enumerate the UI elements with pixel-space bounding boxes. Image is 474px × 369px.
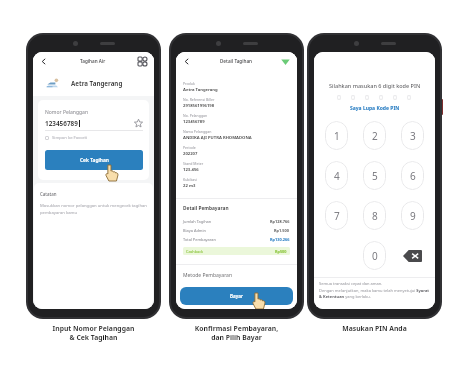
button[interactable]: Back [39,56,50,67]
staticText: ANDIKA AJI PUTRA RHOMADONA [183,135,252,141]
button[interactable]: 5 [363,161,386,190]
staticText: Stand Meter [183,161,204,166]
staticText: 8 [372,209,378,223]
staticText: Input Nomor Pelanggan & Cek Tagihan [26,324,161,342]
staticText: 2918561996198 [183,103,215,109]
button[interactable]: 0 [363,241,386,270]
staticText: 123456789 [45,119,78,128]
button[interactable]: Connection status [280,56,291,67]
staticText: 0 [379,93,384,103]
staticText: 7 [334,209,340,223]
staticText: Detail Pembayaran [183,205,229,212]
staticText: Aetra Tangerang [71,79,123,87]
staticText: 0 [337,93,342,103]
staticText: 22 m3 [183,183,196,189]
staticText: Masukan PIN Anda [307,324,442,333]
staticText: Total Pembayaran [183,237,216,242]
button[interactable]: Back [182,56,193,67]
staticText: 0 [372,249,378,263]
staticText: Saya Lupa Kode PIN [350,105,400,112]
staticText: Catatan [40,191,57,197]
staticText: Silahkan masukan 6 digit kode PIN [329,82,421,89]
staticText: 202207 [183,151,198,157]
button[interactable]: Favourite [134,119,143,128]
staticText: Masukkan nomor pelanggan untuk mengecek … [40,203,147,215]
staticText: Bayar [230,293,243,299]
staticText: 0 [365,93,370,103]
staticText: Rp1.500 [274,228,290,233]
staticText: 3 [410,129,416,143]
button[interactable]: 9 [401,201,424,230]
staticText: Rp130.266 [270,237,290,242]
button[interactable]: Bayar [180,287,293,305]
staticText: 123-456 [183,167,199,173]
staticText: 0 [351,93,356,103]
staticText: Konfirmasi Pembayaran, dan Pilih Bayar [169,324,304,342]
staticText: Cek Tagihan [80,157,109,164]
staticText: 5 [372,169,378,183]
staticText: 4 [334,169,340,183]
staticText: Tagihan Air [80,58,106,64]
staticText: Nama Pelanggan [183,129,212,134]
button[interactable]: Delete [401,241,424,270]
staticText: Jumlah Tagihan [183,219,212,224]
staticText: 0 [407,93,412,103]
staticText: 123456789 [183,119,205,125]
button[interactable]: 6 [401,161,424,190]
staticText: No. Pelanggan [183,113,208,118]
staticText: 2 [372,129,378,143]
button[interactable]: Saya Lupa Kode PIN [350,105,400,112]
button[interactable]: 4 [325,161,348,190]
button[interactable]: 1 [325,121,348,150]
staticText: 6 [410,169,416,183]
button[interactable]: 8 [363,201,386,230]
button[interactable]: Scan QR [136,55,148,67]
staticText: Metode Pembayaran [183,272,232,279]
staticText: Semua transaksi cepat dan aman. Dengan m… [319,281,430,299]
button[interactable]: 3 [401,121,424,150]
staticText: Simpan ke Favorit [52,135,88,141]
staticText: Detail Tagihan [220,58,253,64]
staticText: Produk [183,81,195,86]
staticText: Aetra Tangerang [183,87,218,93]
staticText: 0 [393,93,398,103]
staticText: Periode [183,145,196,150]
staticText: Rp128.766 [270,219,290,224]
staticText: 1 [334,129,340,143]
staticText: Kubikasi [183,177,197,182]
staticText: Nomor Pelanggan [45,109,88,116]
button[interactable]: Cek Tagihan [45,150,143,170]
staticText: Rp500 [275,249,287,254]
staticText: No. Referensi Biller [183,97,215,102]
staticText: 9 [410,209,416,223]
button[interactable]: 7 [325,201,348,230]
staticText: Cashback [186,249,204,254]
staticText: Biaya Admin [183,228,206,233]
button[interactable]: 2 [363,121,386,150]
